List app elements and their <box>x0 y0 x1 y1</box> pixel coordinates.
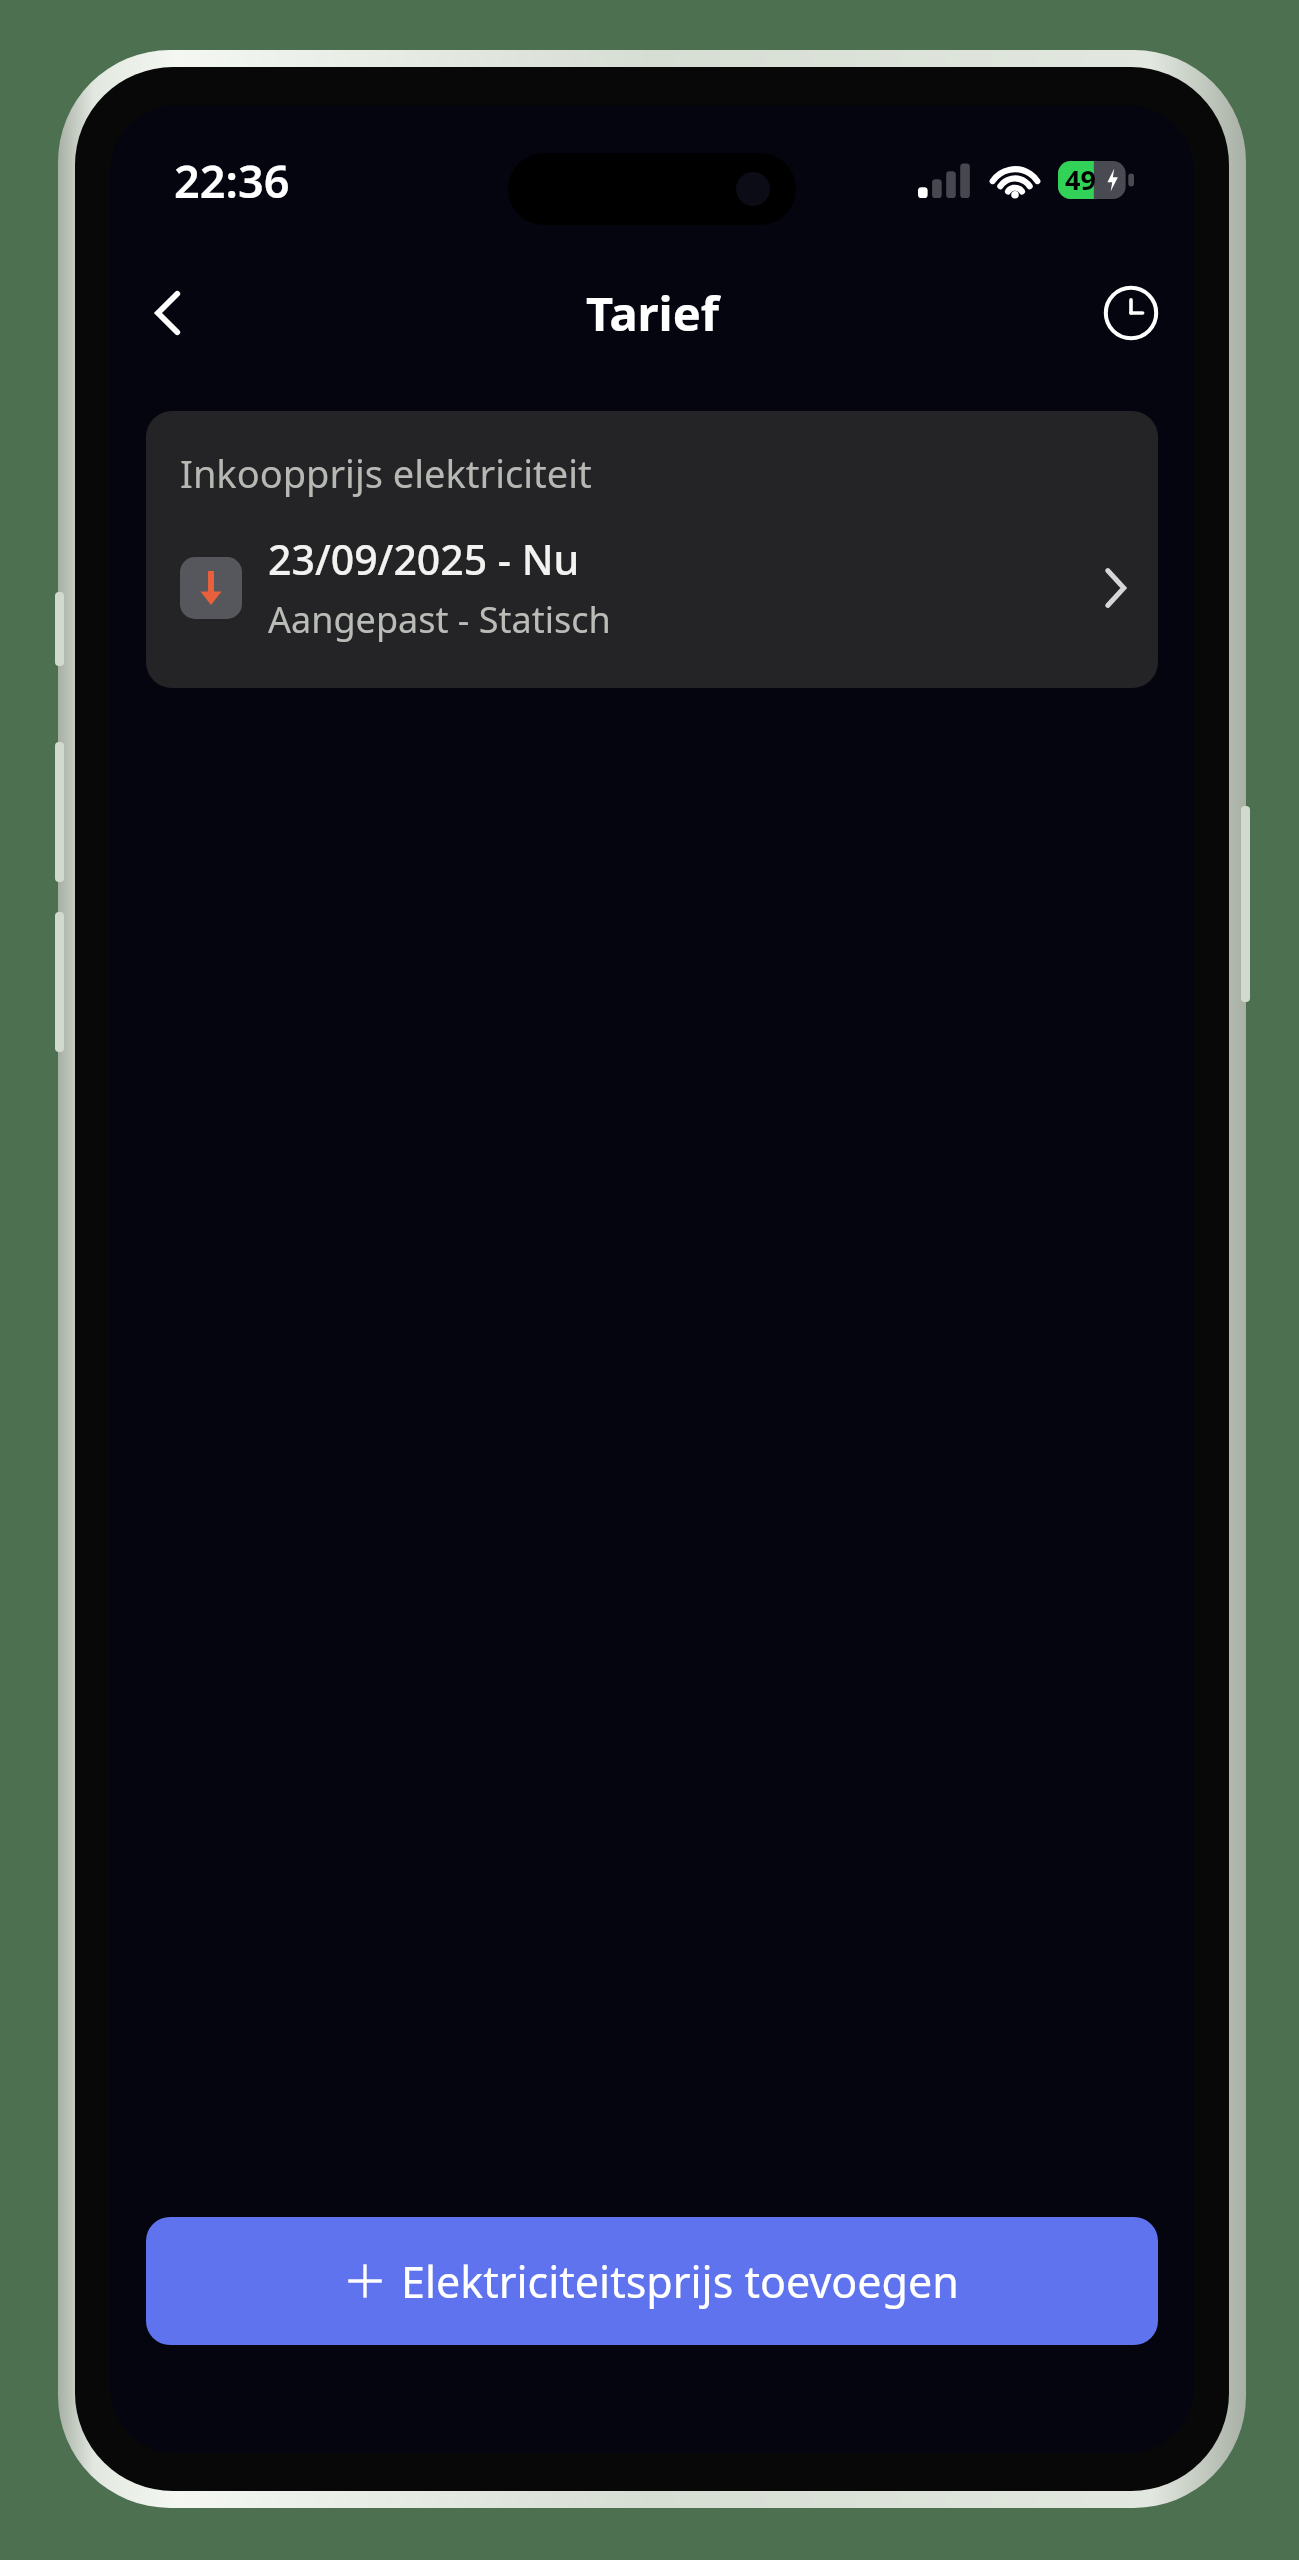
button[interactable]: Elektriciteitsprijs toevoegen <box>146 2217 1158 2345</box>
staticText: 23/09/2025 - Nu <box>268 531 580 587</box>
staticText: 22:36 <box>174 150 290 211</box>
button[interactable]: History <box>1084 266 1178 360</box>
button[interactable]: 23/09/2025 - Nu <box>146 527 1158 688</box>
staticText: Elektriciteitsprijs toevoegen <box>401 2252 959 2311</box>
staticText: 49 <box>1065 161 1096 198</box>
staticText: Aangepast - Statisch <box>268 595 611 644</box>
button[interactable]: Back <box>122 266 216 360</box>
staticText: Inkoopprijs elektriciteit <box>180 447 592 499</box>
staticText: Tarief <box>586 281 719 345</box>
